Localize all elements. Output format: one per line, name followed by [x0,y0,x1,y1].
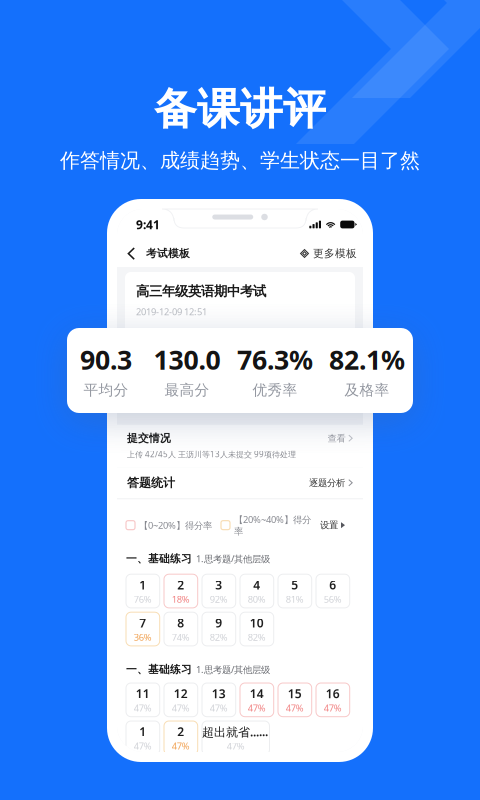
staticText: 1 [139,577,146,593]
button[interactable]: 14 [240,683,274,717]
staticText: 优秀率 [252,381,297,399]
staticText: 56% [324,593,342,605]
staticText: 82% [248,631,266,643]
staticText: 答题统计 [127,475,175,490]
staticText: 81% [286,593,304,605]
staticText: 10 [250,615,264,631]
staticText: 6 [329,577,336,593]
staticText: 一、基础练习 [126,552,192,565]
button[interactable]: 9 [202,612,236,646]
staticText: 92% [210,593,228,605]
staticText: 90.3 [80,342,132,377]
button[interactable]: 16 [316,683,350,717]
staticText: 11 [136,686,150,702]
button[interactable]: 更多模板 [300,247,357,260]
staticText: 7 [139,615,146,631]
staticText: 逐题分析 [309,477,345,489]
button[interactable]: 2 [164,721,198,755]
staticText: 15 [288,686,302,702]
staticText: 设置 [320,519,338,531]
staticText: 及格率 [344,381,389,399]
staticText: 3 [215,577,222,593]
staticText: 2 [177,724,184,740]
staticText: 1 [139,724,146,740]
button[interactable]: 1 [126,574,160,608]
button[interactable]: 提交情况 [117,425,363,467]
staticText: 80% [248,593,266,605]
button[interactable]: 12 [164,683,198,717]
staticText: 16 [326,686,340,702]
staticText: 作答情况、成绩趋势、学生状态一目了然 [60,148,420,173]
staticText: 查看 [327,433,345,444]
staticText: 8 [177,615,184,631]
staticText: 47% [172,740,190,752]
staticText: 最高分 [164,381,209,399]
staticText: 13 [212,686,226,702]
staticText: 47% [286,702,304,714]
staticText: 超出就省...略 [202,724,269,740]
staticText: 上传 42/45人 王沥川等13人未提交 99项待处理 [127,449,296,459]
staticText: 47% [227,740,245,752]
button[interactable]: 超出就省...略 [202,721,269,755]
button[interactable]: 1 [126,721,160,755]
staticText: 36% [134,631,152,643]
staticText: 提交情况 [127,432,171,445]
staticText: 9:41 [136,216,160,232]
button[interactable]: 2 [164,574,198,608]
button[interactable]: 答题统计 [117,467,363,498]
staticText: 14 [250,686,264,702]
staticText: 1.思考题/其他层级 [196,663,270,676]
button[interactable]: 13 [202,683,236,717]
button[interactable]: 11 [126,683,160,717]
button[interactable]: 返回 [123,242,146,265]
staticText: 9 [215,615,222,631]
staticText: 考试模板 [146,247,190,260]
staticText: 4 [253,577,260,593]
staticText: 平均分 [83,381,128,399]
staticText: 74% [172,631,190,643]
button[interactable]: 6 [316,574,350,608]
staticText: 82% [210,631,228,643]
staticText: 2019-12-09 12:51 [136,305,207,318]
button[interactable]: 10 [240,612,274,646]
staticText: 【0~20%】得分率 [139,519,212,531]
staticText: 2 [177,577,184,593]
staticText: 更多模板 [313,247,357,260]
button[interactable]: 15 [278,683,312,717]
button[interactable]: 设置 [320,519,345,531]
staticText: 18% [172,593,190,605]
button[interactable]: 8 [164,612,198,646]
staticText: 47% [324,702,342,714]
staticText: 12 [174,686,188,702]
staticText: 82.1% [329,342,405,377]
staticText: 130.0 [153,342,220,377]
staticText: 47% [134,740,152,752]
staticText: 5 [291,577,298,593]
staticText: 47% [210,702,228,714]
staticText: 76% [134,593,152,605]
button[interactable]: 7 [126,612,160,646]
staticText: 47% [248,702,266,714]
staticText: 备课讲评 [154,83,326,135]
staticText: 47% [134,702,152,714]
staticText: 高三年级英语期中考试 [136,283,266,299]
button[interactable]: 5 [278,574,312,608]
staticText: 1.思考题/其他层级 [196,552,270,565]
button[interactable]: 3 [202,574,236,608]
staticText: 76.3% [237,342,313,377]
staticText: 【20%~40%】得分率 [234,513,311,537]
staticText: 47% [172,702,190,714]
staticText: 一、基础练习 [126,663,192,676]
button[interactable]: 4 [240,574,274,608]
